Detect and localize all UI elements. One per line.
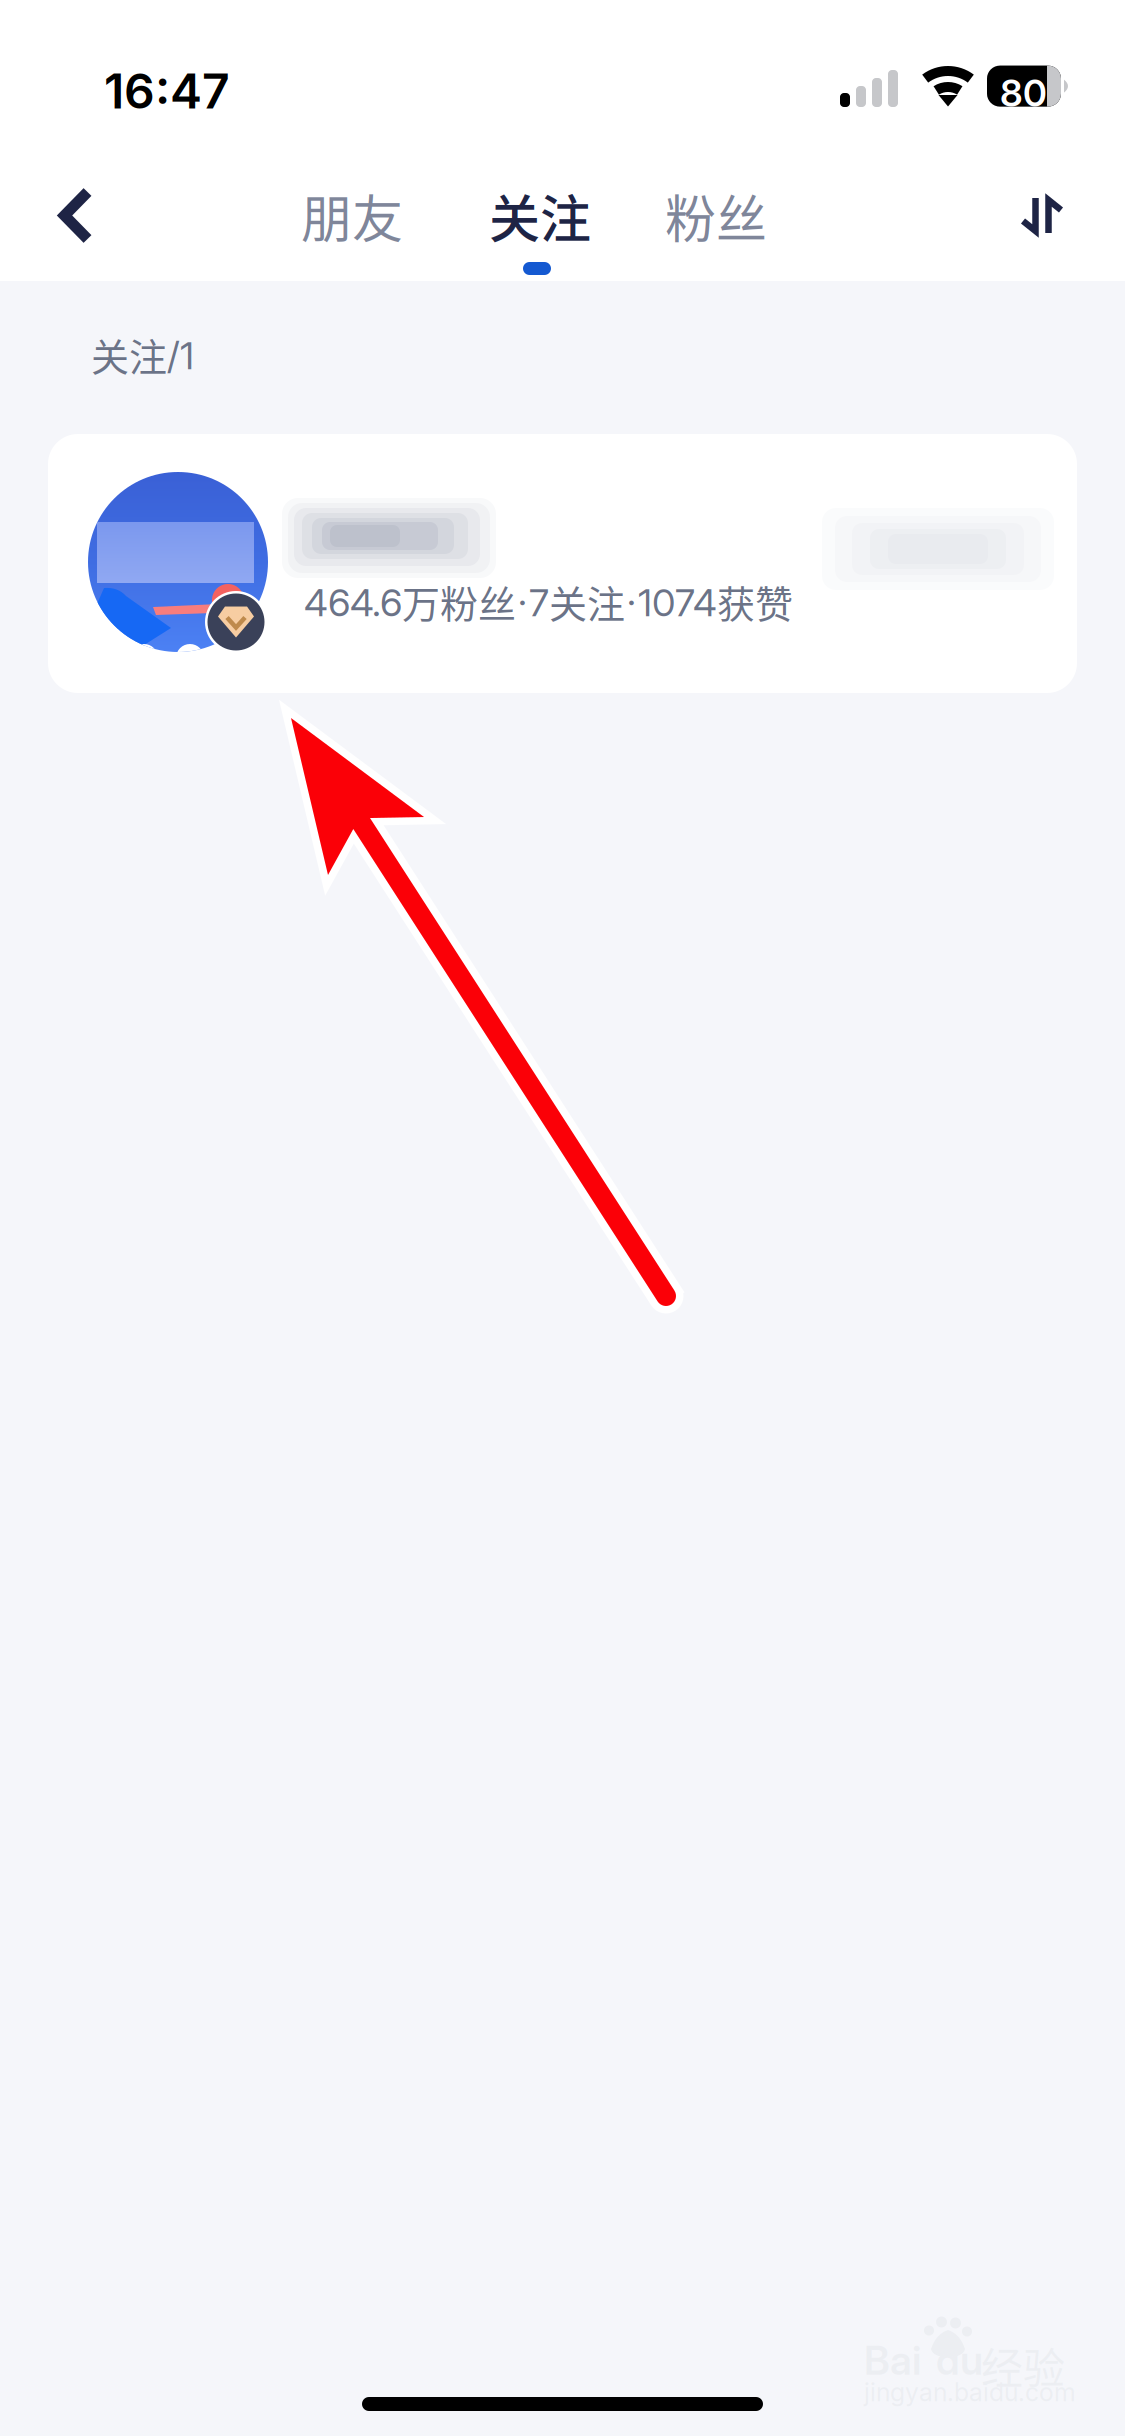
staticText: 经验 <box>981 2335 1065 2396</box>
button[interactable]: 朋友 <box>276 150 428 281</box>
button[interactable]: Back <box>21 150 131 281</box>
staticText: 464.6万粉丝 · 7关注 · 1074获赞 <box>304 574 793 629</box>
staticText: 朋友 <box>301 179 403 252</box>
button[interactable]: Sort <box>987 150 1097 281</box>
staticText: 粉丝 <box>665 179 767 252</box>
staticText: 16:47 <box>104 62 230 120</box>
staticText: 80 <box>1000 71 1047 115</box>
button[interactable]: 464.6万粉丝 · 7关注 · 1074获赞 <box>48 434 1077 693</box>
staticText: jingyan.baidu.com <box>864 2377 1076 2407</box>
button[interactable]: 粉丝 <box>640 150 792 281</box>
staticText: Bai <box>864 2336 921 2384</box>
button[interactable]: 关注 <box>464 150 616 281</box>
staticText: 关注 <box>489 179 591 252</box>
staticText: 关注/1 <box>91 327 194 382</box>
staticText: du <box>936 2336 983 2384</box>
